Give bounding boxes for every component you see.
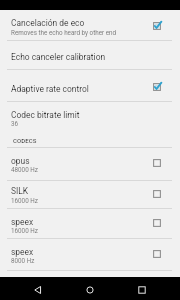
button[interactable]: Checked — [149, 18, 165, 34]
button[interactable] — [0, 209, 180, 239]
staticText: 16000 Hz — [11, 227, 38, 234]
staticText: CODECS — [13, 137, 37, 144]
button[interactable] — [0, 10, 180, 40]
button[interactable] — [0, 180, 180, 209]
staticText: speex — [11, 217, 34, 227]
staticText: 48000 Hz — [11, 166, 38, 173]
staticText: 16000 Hz — [11, 197, 38, 204]
button[interactable] — [0, 69, 180, 102]
button[interactable]: Unchecked — [149, 246, 165, 262]
button[interactable]: Unchecked — [149, 186, 165, 202]
button[interactable]: Recents — [131, 277, 153, 300]
button[interactable]: Home — [79, 277, 101, 300]
staticText: Codec bitrate limit — [11, 110, 80, 120]
staticText: Echo canceler calibration — [11, 52, 106, 62]
button[interactable]: Back — [27, 277, 49, 300]
staticText: Cancelación de eco — [11, 18, 85, 28]
button[interactable] — [0, 102, 180, 132]
staticText: speex — [11, 247, 34, 257]
staticText: SILK — [11, 186, 29, 196]
button[interactable]: Checked — [149, 79, 165, 95]
staticText: 36 — [11, 120, 19, 127]
button[interactable] — [0, 238, 180, 270]
button[interactable] — [0, 40, 180, 69]
button[interactable]: Unchecked — [149, 215, 165, 231]
staticText: opus — [11, 156, 30, 166]
staticText: 8000 Hz — [11, 257, 35, 264]
button[interactable]: Unchecked — [149, 155, 165, 171]
staticText: Adaptive rate control — [11, 84, 89, 94]
staticText: Removes the echo heard by other end — [11, 29, 117, 36]
button[interactable] — [0, 147, 180, 180]
